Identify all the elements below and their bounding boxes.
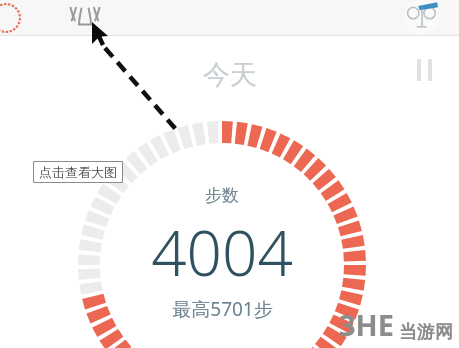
staticText: 当游网 xyxy=(399,321,453,344)
button[interactable]: Profile xyxy=(403,0,441,34)
staticText: 4004 xyxy=(151,210,293,294)
staticText: 今天 xyxy=(203,58,257,92)
staticText: 3HE xyxy=(339,305,395,344)
staticText: 最高5701步 xyxy=(172,296,273,322)
button[interactable]: 点击查看大图 xyxy=(33,161,123,183)
button[interactable]: Pause xyxy=(411,56,437,84)
staticText: 步数 xyxy=(205,185,239,206)
button[interactable]: Refresh xyxy=(0,0,26,36)
button[interactable]: Friends xyxy=(68,1,102,35)
staticText: 点击查看大图 xyxy=(39,164,117,180)
